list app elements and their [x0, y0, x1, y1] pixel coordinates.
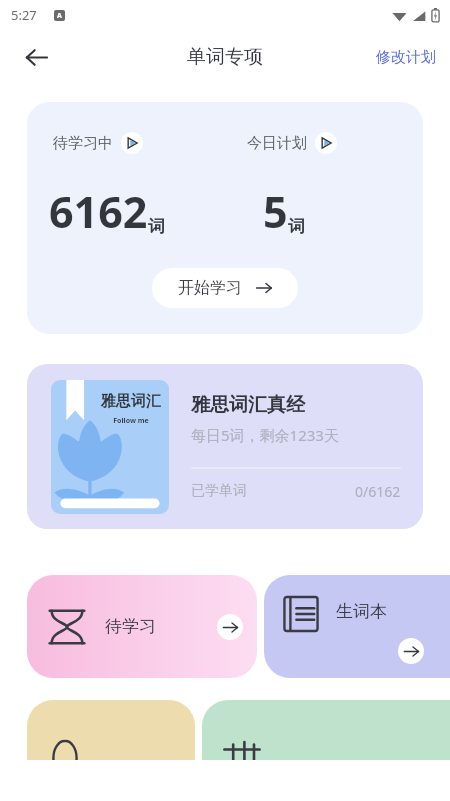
- staticText: 单词专项: [187, 45, 263, 69]
- staticText: 待学习: [105, 616, 156, 637]
- button[interactable]: 生词本: [264, 575, 450, 678]
- staticText: 5: [263, 182, 288, 241]
- staticText: 待学习中: [53, 134, 113, 153]
- button[interactable]: Back: [14, 35, 58, 79]
- staticText: 词: [288, 216, 305, 237]
- staticText: 6162: [49, 182, 148, 241]
- staticText: 生词本: [336, 601, 387, 622]
- button[interactable]: Play 今日计划: [315, 132, 337, 154]
- button[interactable]: [202, 700, 450, 760]
- staticText: 修改计划: [376, 48, 436, 67]
- staticText: 雅思词汇真经: [191, 393, 305, 417]
- staticText: 今日计划: [247, 134, 307, 153]
- button[interactable]: [27, 700, 195, 760]
- staticText: Follow me: [113, 416, 149, 426]
- button[interactable]: 雅思词汇: [27, 364, 423, 529]
- staticText: A: [57, 11, 62, 21]
- button[interactable]: Play 待学习中: [121, 132, 143, 154]
- button[interactable]: 修改计划: [362, 40, 450, 75]
- button[interactable]: Open: [217, 614, 243, 640]
- staticText: 开始学习: [178, 278, 242, 298]
- staticText: 5:27: [11, 6, 37, 24]
- button[interactable]: 待学习: [27, 575, 257, 678]
- staticText: 已学单词: [191, 482, 247, 500]
- button[interactable]: 开始学习: [152, 268, 298, 308]
- staticText: 每日5词，剩余1233天: [191, 425, 339, 445]
- staticText: 雅思词汇: [101, 392, 161, 411]
- staticText: 0/6162: [355, 482, 401, 501]
- button[interactable]: Open: [398, 638, 424, 664]
- staticText: 词: [148, 216, 165, 237]
